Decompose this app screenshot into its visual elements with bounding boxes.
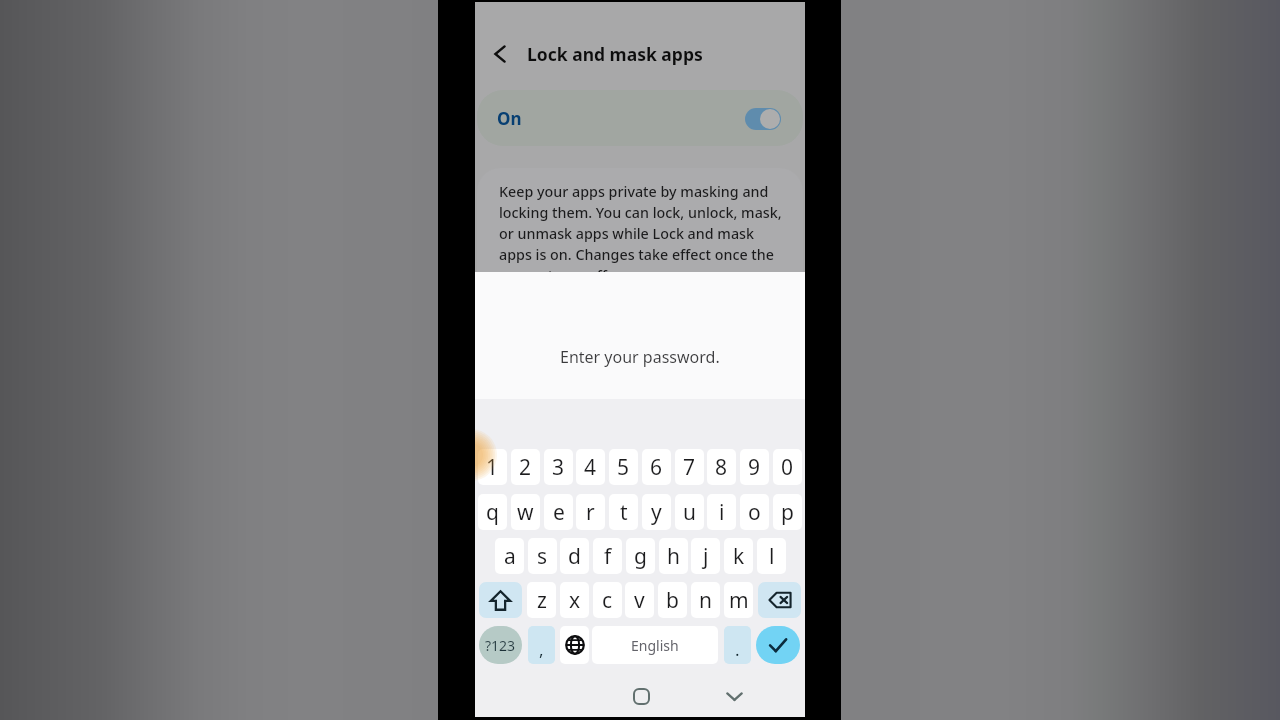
button[interactable]: 1: [478, 449, 507, 485]
button[interactable]: ,: [528, 626, 555, 664]
staticText: y: [651, 498, 662, 527]
button[interactable]: t: [609, 494, 638, 530]
staticText: 6: [650, 453, 663, 482]
button[interactable]: x: [560, 582, 589, 618]
button[interactable]: p: [773, 494, 802, 530]
button[interactable]: Toggle lock and mask apps: [745, 108, 781, 130]
staticText: d: [568, 542, 581, 571]
button[interactable]: Backspace: [758, 582, 801, 618]
staticText: m: [729, 586, 749, 615]
staticText: l: [769, 542, 775, 571]
staticText: r: [586, 498, 595, 527]
button[interactable]: 0: [773, 449, 802, 485]
staticText: x: [569, 586, 581, 615]
staticText: f: [604, 542, 612, 571]
button[interactable]: r: [576, 494, 605, 530]
staticText: Enter your password.: [560, 346, 720, 368]
staticText: g: [634, 542, 647, 571]
staticText: 0: [781, 453, 794, 482]
staticText: c: [602, 586, 613, 615]
button[interactable]: 2: [511, 449, 540, 485]
button[interactable]: i: [707, 494, 736, 530]
button[interactable]: 4: [576, 449, 605, 485]
button[interactable]: 7: [675, 449, 704, 485]
button[interactable]: 8: [707, 449, 736, 485]
staticText: q: [486, 498, 499, 527]
button[interactable]: j: [691, 538, 720, 574]
button[interactable]: Done: [756, 626, 800, 664]
staticText: p: [781, 498, 794, 527]
staticText: 5: [617, 453, 630, 482]
button[interactable]: 9: [740, 449, 769, 485]
button[interactable]: o: [740, 494, 769, 530]
staticText: b: [666, 586, 679, 615]
button[interactable]: s: [528, 538, 557, 574]
button[interactable]: 3: [544, 449, 573, 485]
button[interactable]: f: [593, 538, 622, 574]
staticText: 1: [486, 453, 499, 482]
button[interactable]: g: [626, 538, 655, 574]
staticText: English: [631, 636, 679, 655]
button[interactable]: Change language: [560, 626, 589, 664]
button[interactable]: z: [527, 582, 556, 618]
staticText: 3: [552, 453, 565, 482]
button[interactable]: a: [495, 538, 524, 574]
button[interactable]: Back: [488, 42, 512, 66]
button[interactable]: n: [691, 582, 720, 618]
button[interactable]: w: [511, 494, 540, 530]
button[interactable]: m: [724, 582, 753, 618]
staticText: w: [517, 498, 534, 527]
button[interactable]: u: [675, 494, 704, 530]
staticText: 2: [519, 453, 532, 482]
staticText: h: [667, 542, 680, 571]
button[interactable]: c: [593, 582, 622, 618]
button[interactable]: 5: [609, 449, 638, 485]
button[interactable]: v: [625, 582, 654, 618]
button[interactable]: y: [642, 494, 671, 530]
staticText: e: [553, 498, 565, 527]
button[interactable]: q: [478, 494, 507, 530]
staticText: j: [703, 542, 709, 571]
staticText: u: [683, 498, 696, 527]
button[interactable]: Home: [629, 684, 653, 708]
staticText: 4: [584, 453, 597, 482]
button[interactable]: ?123: [479, 626, 522, 664]
staticText: On: [497, 107, 522, 130]
button[interactable]: d: [560, 538, 589, 574]
staticText: i: [719, 498, 725, 527]
staticText: 8: [715, 453, 728, 482]
staticText: .: [735, 638, 740, 661]
button[interactable]: 6: [642, 449, 671, 485]
button[interactable]: h: [659, 538, 688, 574]
staticText: s: [537, 542, 548, 571]
button[interactable]: Hide keyboard: [722, 684, 746, 708]
button[interactable]: l: [757, 538, 786, 574]
button[interactable]: b: [658, 582, 687, 618]
staticText: Lock and mask apps: [527, 42, 703, 66]
staticText: z: [537, 586, 547, 615]
button[interactable]: e: [544, 494, 573, 530]
button[interactable]: On: [477, 90, 803, 146]
staticText: ?123: [485, 636, 516, 655]
staticText: n: [699, 586, 712, 615]
staticText: 7: [683, 453, 696, 482]
staticText: o: [748, 498, 761, 527]
staticText: k: [733, 542, 745, 571]
staticText: 9: [748, 453, 761, 482]
button[interactable]: .: [724, 626, 751, 664]
staticText: Keep your apps private by masking and lo…: [499, 182, 786, 286]
staticText: a: [504, 542, 516, 571]
button[interactable]: k: [724, 538, 753, 574]
button[interactable]: Shift: [479, 582, 522, 618]
button[interactable]: English: [592, 626, 718, 664]
staticText: v: [634, 586, 645, 615]
staticText: t: [620, 498, 628, 527]
staticText: ,: [539, 638, 544, 661]
